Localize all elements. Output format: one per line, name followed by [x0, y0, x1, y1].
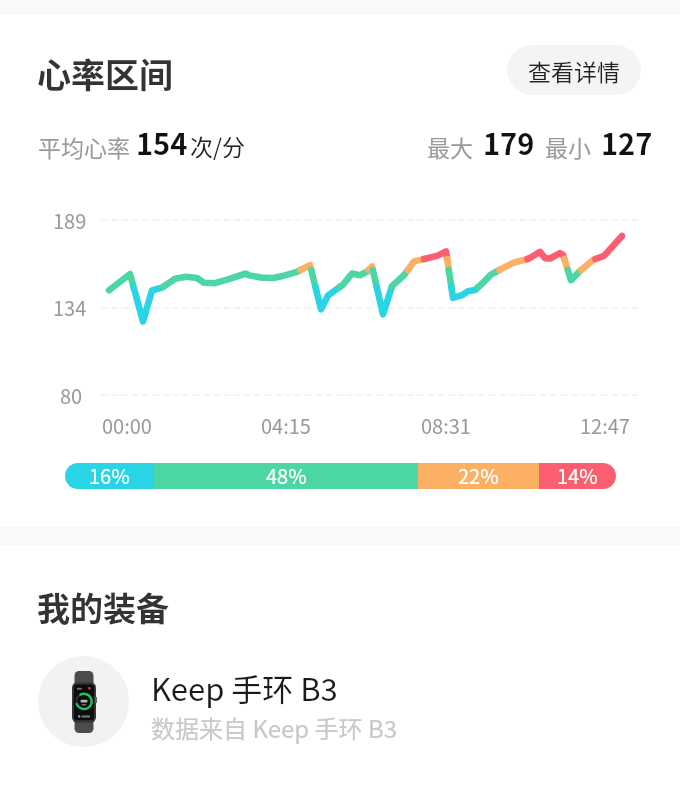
staticText: 心率区间: [37, 49, 173, 98]
staticText: 次/分: [190, 129, 246, 162]
staticText: 数据来自 Keep 手环 B3: [151, 710, 397, 745]
staticText: 我的装备: [37, 583, 169, 631]
staticText: 08:31: [421, 411, 471, 440]
button[interactable]: Keep 手环 B3: [0, 651, 680, 751]
staticText: 48%: [266, 463, 307, 487]
staticText: 平均心率: [38, 130, 130, 163]
staticText: 04:15: [261, 411, 311, 440]
staticText: 最大: [427, 130, 473, 163]
staticText: 127: [601, 121, 653, 163]
button[interactable]: 查看详情: [507, 45, 641, 95]
staticText: 154: [136, 121, 188, 163]
staticText: 179: [483, 121, 535, 163]
staticText: 16%: [89, 463, 130, 487]
staticText: 查看详情: [528, 54, 620, 87]
staticText: 22%: [458, 463, 499, 487]
staticText: 00:00: [102, 411, 152, 440]
staticText: 最小: [545, 130, 591, 163]
staticText: 134: [53, 293, 87, 322]
staticText: 189: [53, 206, 87, 235]
staticText: 80: [60, 381, 83, 410]
staticText: 14%: [557, 463, 598, 487]
staticText: 12:47: [580, 411, 630, 440]
staticText: Keep 手环 B3: [151, 665, 338, 710]
